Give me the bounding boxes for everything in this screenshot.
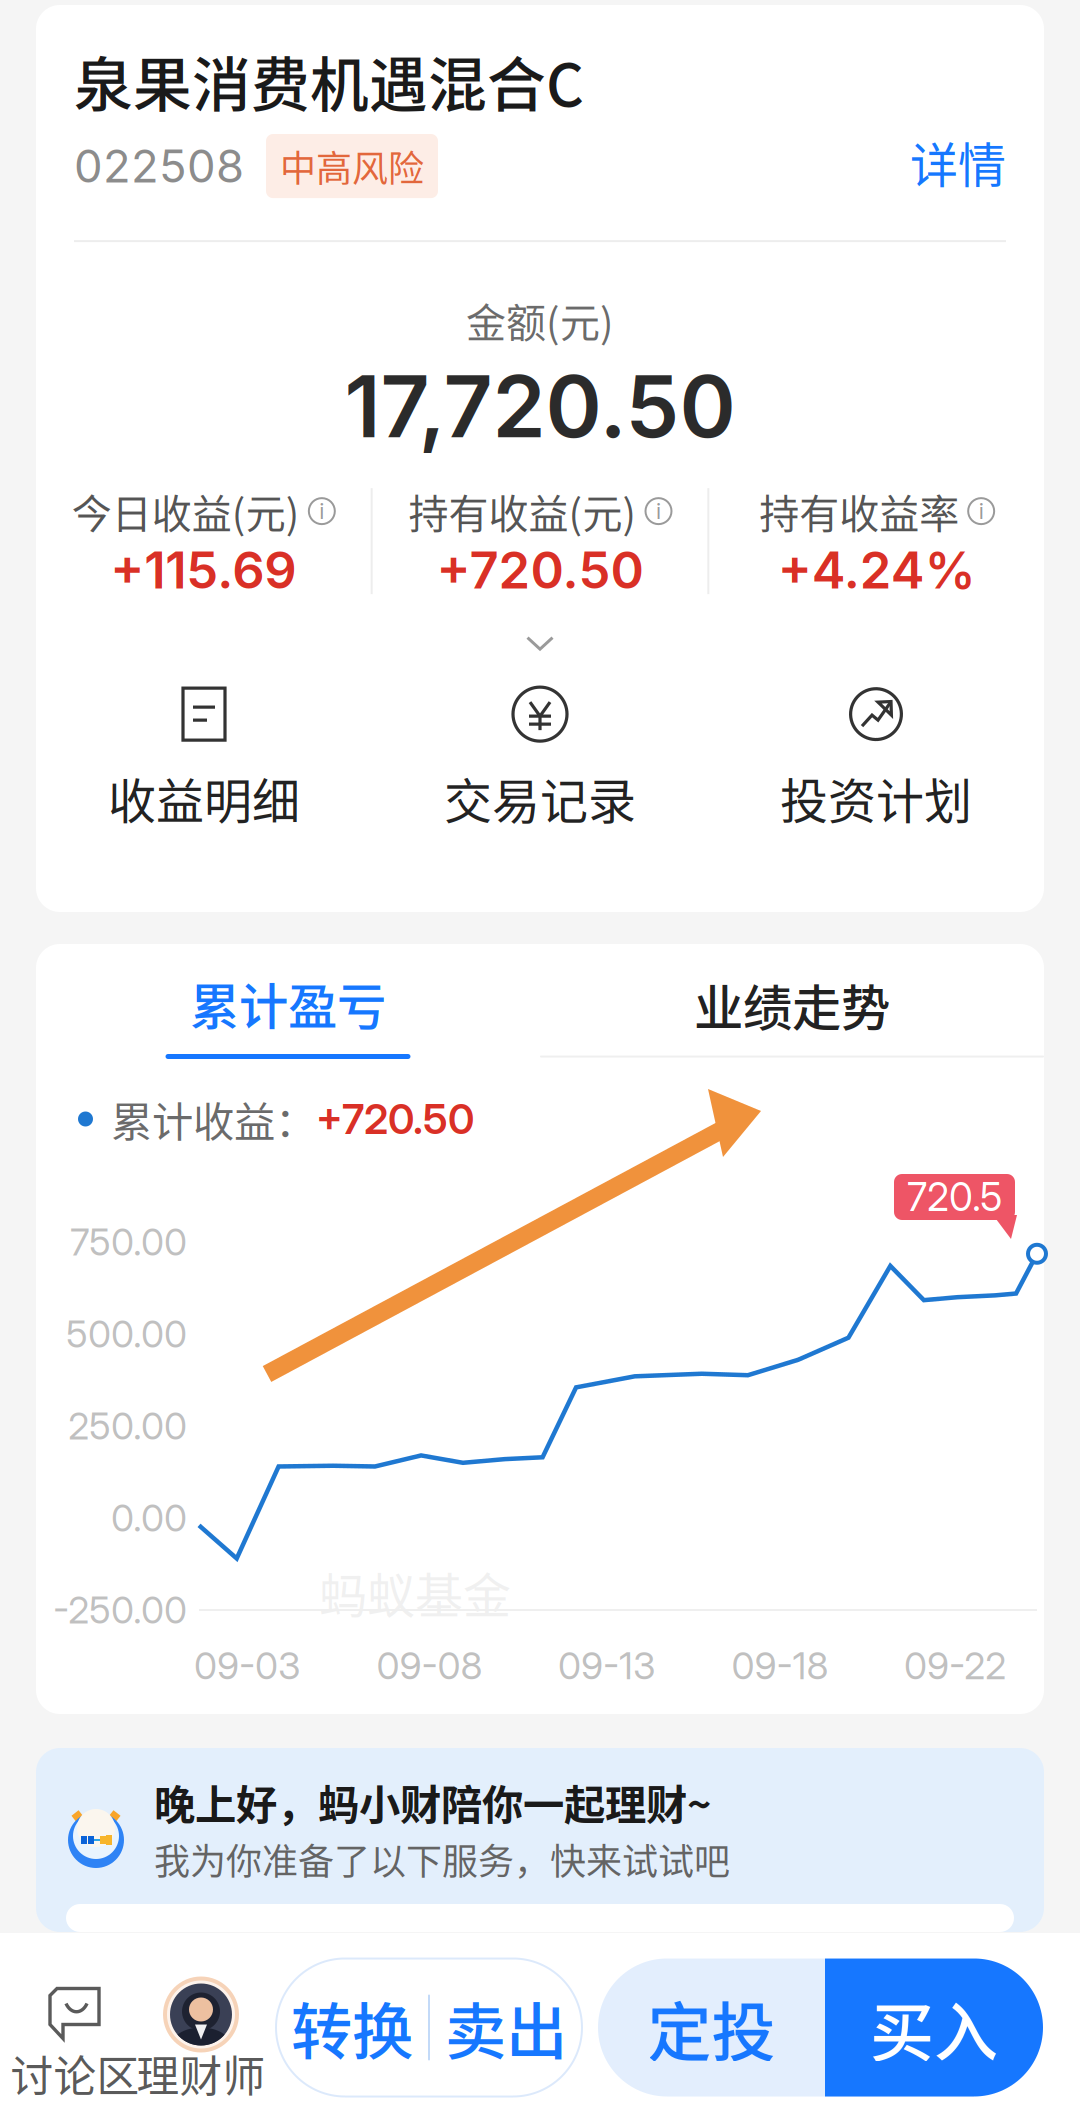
staticText: i [979, 498, 984, 524]
staticText: 交易记录 [444, 763, 636, 833]
staticText: 投资计划 [780, 763, 972, 833]
staticText: 收益明细 [108, 763, 300, 833]
staticText: 讨论区 [10, 2043, 139, 2104]
staticText: 今日收益(元) [72, 482, 300, 540]
staticText: +720.50 [316, 1094, 474, 1144]
staticText: i [656, 498, 661, 524]
staticText: 0.00 [111, 1495, 187, 1541]
button[interactable]: 理财师 [138, 1960, 264, 2094]
button[interactable]: 收益明细 [36, 681, 372, 839]
staticText: +115.69 [110, 539, 296, 601]
staticText: 理财师 [136, 2043, 265, 2104]
staticText: 750.00 [70, 1219, 187, 1265]
button[interactable]: 投资计划 [708, 681, 1044, 839]
staticText: 09-03 [194, 1643, 301, 1688]
staticText: 720.5 [907, 1174, 1002, 1220]
staticText: 250.00 [68, 1403, 187, 1449]
staticText: 09-08 [376, 1643, 482, 1688]
button[interactable]: 讨论区 [12, 1960, 138, 2094]
staticText: 业绩走势 [694, 969, 890, 1040]
staticText: +4.24% [778, 539, 976, 601]
staticText: 晚上好，蚂小财陪你一起理财~ [154, 1772, 711, 1832]
button[interactable]: 累计盈亏 [36, 944, 540, 1059]
staticText: 定投 [647, 1981, 775, 2074]
staticText: -250.00 [53, 1587, 187, 1633]
staticText: 022508 [74, 139, 244, 193]
button[interactable]: 交易记录 [372, 681, 708, 839]
staticText: 金额(元) [466, 291, 614, 349]
staticText: 转换 [291, 1983, 413, 2072]
staticText: 持有收益(元) [408, 482, 636, 540]
button[interactable]: 晚上好，蚂小财陪你一起理财~ [36, 1748, 1044, 1932]
button[interactable]: 定投 [598, 1958, 825, 2096]
staticText: 09-18 [731, 1643, 828, 1688]
staticText: 累计盈亏 [190, 967, 386, 1039]
button[interactable]: 转换 [276, 1958, 428, 2096]
staticText: 泉果消费机遇混合C [74, 38, 584, 123]
staticText: 我为你准备了以下服务，快来试试吧 [154, 1833, 730, 1885]
staticText: 卖出 [445, 1983, 567, 2072]
button[interactable]: 业绩走势 [540, 945, 1044, 1057]
button[interactable]: 详情 [910, 5, 1006, 196]
staticText: +720.50 [436, 539, 643, 601]
staticText: 17,720.50 [344, 354, 735, 458]
staticText: 持有收益率 [759, 482, 959, 540]
staticText: 蚂蚁基金 [319, 1557, 511, 1627]
staticText: 09-22 [904, 1643, 1006, 1688]
staticText: 中高风险 [280, 140, 424, 192]
button[interactable]: 买入 [825, 1958, 1043, 2096]
staticText: 买入 [870, 1981, 998, 2074]
staticText: 500.00 [66, 1311, 187, 1357]
staticText: 累计收益： [93, 1089, 316, 1149]
staticText: i [319, 498, 324, 524]
button[interactable]: 卖出 [430, 1958, 582, 2096]
staticText: 详情 [910, 127, 1006, 196]
staticText: 09-13 [558, 1643, 656, 1688]
